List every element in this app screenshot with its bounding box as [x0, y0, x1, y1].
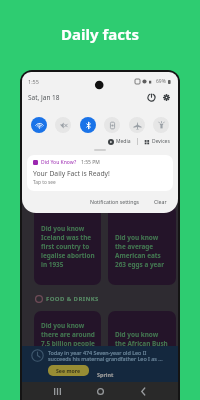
staticText: Sat, Jan 18: [28, 93, 60, 102]
staticText: Did You Know?: [41, 159, 77, 166]
staticText: Sprint: [97, 371, 114, 378]
button[interactable]: Quick setting: [129, 117, 145, 133]
button[interactable]: Quick setting: [55, 117, 71, 133]
button[interactable]: Media: [106, 138, 133, 145]
button[interactable]: Notification settings: [87, 195, 143, 208]
staticText: Devices: [152, 138, 170, 145]
staticText: Did you know the African Bush Elephant i…: [115, 330, 168, 366]
button[interactable]: Power: [146, 92, 157, 103]
staticText: 1:55: [28, 78, 39, 85]
staticText: Notification settings: [90, 198, 140, 205]
staticText: Today in year 474 Seven-year old Leo II …: [48, 349, 163, 363]
button[interactable]: Did You Know?: [27, 155, 173, 191]
button[interactable]: Quick setting: [31, 117, 47, 133]
button[interactable]: Did you know the African Bush Elephant i…: [108, 311, 176, 392]
staticText: Did you know there are around 7.5 billio…: [41, 321, 95, 357]
button[interactable]: See more: [48, 365, 89, 376]
button[interactable]: Settings: [161, 92, 172, 103]
staticText: 1:55 PM: [81, 159, 100, 166]
staticText: 69%: [156, 78, 166, 85]
button[interactable]: Did you know Iceland was the first count…: [34, 205, 101, 285]
staticText: Media: [116, 138, 131, 145]
button[interactable]: Did you know there are around 7.5 billio…: [34, 311, 101, 392]
staticText: Did you know the average American eats 2…: [115, 233, 165, 269]
button[interactable]: Recents: [49, 383, 65, 399]
button[interactable]: Clear: [151, 195, 170, 208]
staticText: Clear: [154, 198, 167, 205]
staticText: Tap to see: [33, 179, 56, 186]
button[interactable]: Home: [92, 383, 108, 399]
button[interactable]: Today in year 474 Seven-year old Leo II …: [22, 346, 178, 382]
staticText: Did you know Iceland was the first count…: [41, 224, 95, 269]
button[interactable]: Quick setting: [104, 117, 120, 133]
button[interactable]: Quick setting: [153, 117, 169, 133]
button[interactable]: Devices: [142, 138, 172, 145]
staticText: Daily facts: [61, 24, 139, 44]
button[interactable]: Quick setting: [80, 117, 96, 133]
button[interactable]: Did you know the average American eats 2…: [108, 205, 176, 285]
staticText: See more: [56, 367, 81, 374]
button[interactable]: Back: [135, 383, 151, 399]
staticText: Your Daily Fact is Ready!: [33, 169, 110, 178]
staticText: FOOD & DRINKS: [46, 295, 99, 303]
